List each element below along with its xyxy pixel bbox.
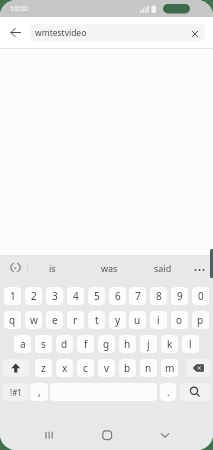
staticText: 3 bbox=[52, 289, 58, 303]
staticText: . bbox=[167, 385, 170, 399]
button[interactable] bbox=[3, 359, 29, 377]
button[interactable] bbox=[156, 427, 174, 443]
staticText: x bbox=[62, 361, 68, 375]
staticText: q bbox=[9, 313, 16, 327]
button[interactable]: 3 bbox=[46, 287, 63, 305]
staticText: d bbox=[61, 337, 68, 351]
staticText: 9 bbox=[177, 289, 183, 303]
staticText: z bbox=[41, 361, 46, 375]
button[interactable] bbox=[180, 383, 210, 401]
button[interactable]: x bbox=[56, 359, 73, 377]
button[interactable]: a bbox=[14, 335, 31, 353]
button[interactable] bbox=[192, 260, 208, 275]
staticText: 5 bbox=[94, 289, 100, 303]
staticText: u bbox=[134, 313, 141, 327]
button[interactable]: u bbox=[129, 311, 146, 329]
staticText: wmtestvideo bbox=[35, 27, 87, 39]
button[interactable]: y bbox=[109, 311, 126, 329]
button[interactable]: v bbox=[98, 359, 115, 377]
staticText: i bbox=[157, 313, 160, 327]
staticText: m bbox=[165, 361, 175, 375]
staticText: 4 bbox=[73, 289, 79, 303]
button[interactable]: 1 bbox=[4, 287, 21, 305]
button[interactable]: f bbox=[77, 335, 94, 353]
button[interactable]: c bbox=[77, 359, 94, 377]
button[interactable]: l bbox=[182, 335, 199, 353]
button[interactable]: o bbox=[171, 311, 188, 329]
staticText: s bbox=[41, 337, 46, 351]
button[interactable]: was bbox=[91, 260, 127, 275]
staticText: t bbox=[95, 313, 99, 327]
staticText: g bbox=[103, 337, 110, 351]
staticText: 0 bbox=[198, 289, 204, 303]
staticText: b bbox=[124, 361, 131, 375]
staticText: , bbox=[38, 385, 41, 399]
button[interactable]: 0 bbox=[192, 287, 209, 305]
button[interactable]: i bbox=[150, 311, 167, 329]
button[interactable]: h bbox=[119, 335, 136, 353]
button[interactable]: 8 bbox=[150, 287, 167, 305]
staticText: 8 bbox=[156, 289, 162, 303]
staticText: k bbox=[167, 337, 173, 351]
staticText: o bbox=[176, 313, 183, 327]
button[interactable]: 5 bbox=[88, 287, 105, 305]
button[interactable]: , bbox=[30, 383, 48, 401]
button[interactable]: 2 bbox=[25, 287, 42, 305]
staticText: !#1 bbox=[10, 387, 22, 398]
staticText: j bbox=[147, 337, 150, 351]
staticText: said bbox=[154, 262, 172, 274]
staticText: h bbox=[124, 337, 131, 351]
staticText: 10:00 bbox=[10, 4, 28, 14]
staticText: is bbox=[49, 262, 56, 274]
button[interactable]: m bbox=[161, 359, 178, 377]
staticText: c bbox=[83, 361, 88, 375]
staticText: 6 bbox=[115, 289, 121, 303]
button[interactable]: b bbox=[119, 359, 136, 377]
staticText: n bbox=[145, 361, 152, 375]
staticText: a bbox=[20, 337, 26, 351]
staticText: v bbox=[104, 361, 110, 375]
button[interactable]: 9 bbox=[171, 287, 188, 305]
button[interactable] bbox=[6, 23, 25, 42]
staticText: 1 bbox=[10, 289, 16, 303]
staticText: e bbox=[52, 313, 58, 327]
button[interactable]: k bbox=[161, 335, 178, 353]
button[interactable]: said bbox=[145, 260, 181, 275]
button[interactable] bbox=[186, 359, 211, 377]
button[interactable]: j bbox=[140, 335, 157, 353]
button[interactable] bbox=[30, 24, 205, 41]
button[interactable] bbox=[189, 28, 201, 40]
button[interactable]: 4 bbox=[67, 287, 84, 305]
staticText: p bbox=[197, 313, 204, 327]
button[interactable]: 6 bbox=[109, 287, 126, 305]
button[interactable]: q bbox=[4, 311, 21, 329]
staticText: r bbox=[73, 313, 78, 327]
staticText: 2 bbox=[31, 289, 37, 303]
staticText: 7 bbox=[135, 289, 141, 303]
button[interactable]: r bbox=[67, 311, 84, 329]
staticText: l bbox=[189, 337, 192, 351]
button[interactable]: g bbox=[98, 335, 115, 353]
button[interactable] bbox=[5, 258, 26, 277]
button[interactable]: is bbox=[34, 260, 70, 275]
button[interactable]: !#1 bbox=[3, 383, 29, 401]
staticText: y bbox=[115, 313, 121, 327]
button[interactable] bbox=[98, 427, 116, 443]
button[interactable]: . bbox=[160, 383, 176, 401]
staticText: f bbox=[84, 337, 88, 351]
button[interactable] bbox=[40, 427, 58, 443]
button[interactable]: p bbox=[192, 311, 209, 329]
button[interactable]: s bbox=[35, 335, 52, 353]
button[interactable]: 7 bbox=[129, 287, 146, 305]
button[interactable]: w bbox=[25, 311, 42, 329]
staticText: w bbox=[30, 313, 38, 327]
button[interactable]: e bbox=[46, 311, 63, 329]
staticText: was bbox=[101, 262, 118, 274]
button[interactable]: d bbox=[56, 335, 73, 353]
button[interactable]: z bbox=[35, 359, 52, 377]
button[interactable]: n bbox=[140, 359, 157, 377]
button[interactable]: t bbox=[88, 311, 105, 329]
